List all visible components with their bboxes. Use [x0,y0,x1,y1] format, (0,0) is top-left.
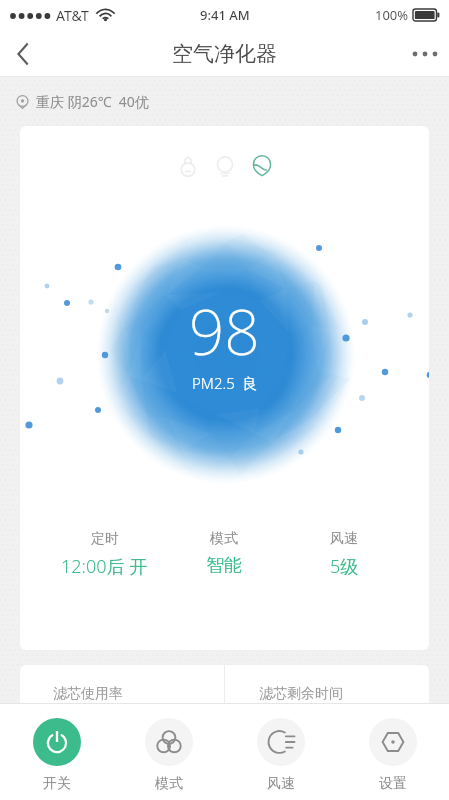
staticText: 5级 [330,554,359,579]
button[interactable]: 设置 [337,703,449,800]
button[interactable]: More options [401,30,449,77]
staticText: 空气净化器 [172,41,277,67]
staticText: 定时 [91,530,119,548]
button[interactable]: Humidify [212,153,238,179]
button[interactable]: 风速 [284,530,404,579]
button[interactable]: 滤芯剩余时间 [225,665,429,745]
button[interactable]: 模式 [113,703,225,800]
button[interactable]: 风速 [225,703,337,800]
staticText: AT&T [56,6,89,25]
staticText: 智能 [206,554,242,577]
button[interactable]: 滤芯使用率 [20,665,224,745]
button[interactable]: 模式 [164,530,284,577]
staticText: 重庆 阴26℃ 40优 [36,92,149,111]
staticText: 模式 [210,530,238,548]
staticText: 风速 [267,775,295,793]
staticText: 100% [375,6,409,24]
button[interactable]: Air quality [249,153,275,179]
staticText: 98 [189,289,260,373]
button[interactable]: Back [0,31,46,77]
button[interactable]: Sterilize [175,153,201,179]
staticText: 设置 [379,775,407,793]
staticText: 滤芯剩余时间 [259,685,343,703]
staticText: 9:41 AM [200,6,250,24]
staticText: PM2.5 良 [192,373,258,393]
staticText: 开关 [43,775,71,793]
staticText: 风速 [330,530,358,548]
staticText: 滤芯使用率 [53,685,123,703]
button[interactable]: 定时 [45,530,164,579]
staticText: 模式 [155,775,183,793]
staticText: 12:00后 开 [61,554,148,579]
button[interactable]: 开关 [0,703,113,800]
